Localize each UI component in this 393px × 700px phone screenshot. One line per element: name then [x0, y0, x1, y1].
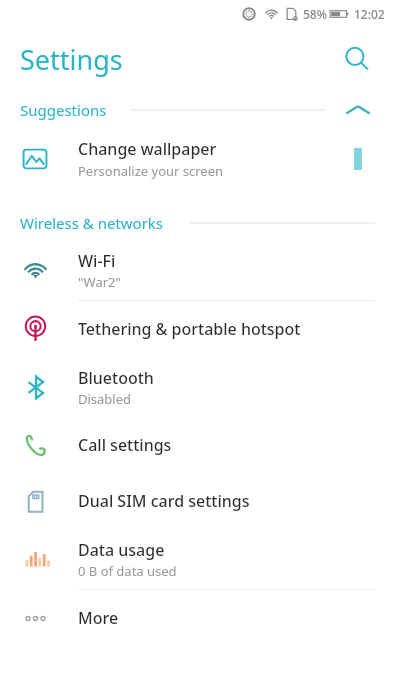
staticText: Data usage: [78, 539, 165, 561]
button[interactable]: Data usage: [0, 529, 393, 589]
staticText: Tethering & portable hotspot: [78, 318, 301, 340]
staticText: Personalize your screen: [78, 162, 224, 180]
staticText: Suggestions: [20, 100, 107, 120]
button[interactable]: Tethering & portable hotspot: [0, 301, 393, 357]
button[interactable]: More options: [339, 140, 377, 178]
button[interactable]: Search: [335, 37, 379, 81]
staticText: Call settings: [78, 434, 172, 456]
button[interactable]: Dual SIM card settings: [0, 473, 393, 529]
staticText: 12:02: [354, 6, 385, 22]
staticText: 0 B of data used: [78, 562, 177, 580]
button[interactable]: Change wallpaper: [0, 130, 393, 188]
staticText: 58%: [303, 6, 327, 22]
staticText: Settings: [20, 41, 123, 78]
staticText: "War2": [78, 273, 121, 291]
button[interactable]: Call settings: [0, 417, 393, 473]
button[interactable]: Collapse suggestions: [337, 90, 379, 130]
staticText: Bluetooth: [78, 367, 154, 389]
staticText: More: [78, 607, 119, 629]
staticText: Change wallpaper: [78, 138, 217, 160]
staticText: Dual SIM card settings: [78, 490, 250, 512]
button[interactable]: Bluetooth: [0, 357, 393, 417]
staticText: Disabled: [78, 390, 132, 408]
staticText: Wireless & networks: [20, 213, 164, 233]
staticText: Wi-Fi: [78, 250, 116, 272]
button[interactable]: More: [0, 590, 393, 646]
button[interactable]: Wi-Fi: [0, 240, 393, 300]
